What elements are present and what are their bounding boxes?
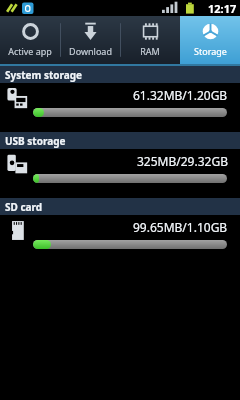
staticText: 61.32MB/1.20GB <box>133 87 228 103</box>
staticText: 325MB/29.32GB <box>137 153 228 169</box>
button[interactable]: RAM <box>120 16 180 64</box>
staticText: 99.65MB/1.10GB <box>133 219 228 235</box>
staticText: 12:17 <box>208 1 237 16</box>
staticText: SD card <box>5 200 43 214</box>
staticText: System storage <box>5 68 83 82</box>
staticText: Storage <box>194 45 227 57</box>
staticText: Download <box>69 45 112 57</box>
staticText: Active app <box>8 45 52 57</box>
other: SD card <box>7 220 28 241</box>
staticText: RAM <box>140 45 160 57</box>
button[interactable]: SD card <box>0 198 240 264</box>
button[interactable]: Download <box>60 16 120 64</box>
other: System storage <box>7 88 28 109</box>
button[interactable]: USB storage <box>0 132 240 198</box>
button[interactable]: Storage <box>180 16 240 64</box>
button[interactable]: Active app <box>0 16 60 64</box>
button[interactable]: System storage <box>0 66 240 132</box>
staticText: USB storage <box>5 134 66 148</box>
other: USB storage <box>7 154 28 175</box>
